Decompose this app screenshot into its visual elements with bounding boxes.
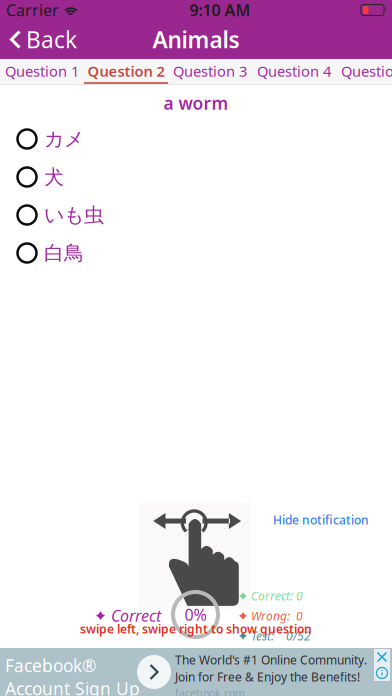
staticText: Back [26, 24, 77, 54]
staticText: 白鳥 [44, 241, 84, 265]
button[interactable]: Question 3 [168, 59, 252, 85]
staticText: Question 3 [173, 61, 247, 81]
button[interactable]: Back [0, 20, 87, 59]
button[interactable]: 犬 [0, 158, 392, 196]
button[interactable]: Ad info [374, 665, 390, 681]
button[interactable]: いも虫 [0, 196, 392, 234]
staticText: 9:10 AM [189, 0, 250, 21]
staticText: The World's #1 Online Community. [175, 652, 367, 668]
staticText: Carrier [6, 0, 59, 21]
staticText: カメ [44, 127, 84, 151]
staticText: Question 4 [257, 61, 331, 81]
staticText: Correct: 0 [251, 588, 303, 604]
button[interactable]: Facebook® [0, 648, 368, 696]
staticText: Correct [111, 605, 161, 626]
staticText: Test: 0/52 [251, 628, 311, 644]
staticText: いも虫 [44, 203, 104, 227]
staticText: Question 1 [5, 61, 79, 81]
staticText: Question 2 [87, 61, 164, 81]
staticText: Account Sign Up [5, 677, 140, 696]
button[interactable]: カメ [0, 120, 392, 158]
staticText: swipe left, swipe right to show question [80, 621, 312, 637]
staticText: facebook.com [175, 686, 245, 696]
button[interactable]: Question 2 [84, 59, 168, 85]
staticText: Wrong: 0 [251, 608, 303, 624]
button[interactable]: 白鳥 [0, 234, 392, 272]
button[interactable]: Question 4 [252, 59, 336, 85]
button[interactable]: Question 1 [0, 59, 84, 85]
staticText: Animals [152, 24, 239, 54]
staticText: Join for Free & Enjoy the Benefits! [175, 669, 360, 685]
staticText: 犬 [44, 165, 64, 189]
button[interactable]: Close ad [374, 649, 390, 665]
button[interactable]: Question 5 [336, 59, 392, 85]
staticText: Facebook® [5, 654, 96, 677]
staticText: Hide notification [273, 512, 369, 528]
staticText: Question 5 [341, 61, 392, 81]
staticText: a worm [163, 91, 228, 114]
staticText: 0% [184, 604, 206, 625]
button[interactable]: Hide notification [266, 506, 376, 534]
